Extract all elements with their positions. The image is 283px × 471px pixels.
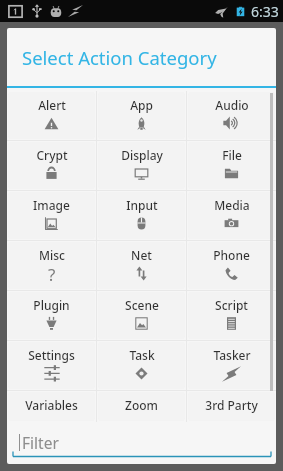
staticText: Plugin — [33, 297, 70, 313]
button[interactable]: Net — [98, 242, 185, 289]
staticText: File — [222, 147, 242, 163]
staticText: Tasker — [213, 347, 251, 363]
staticText: Display — [121, 147, 163, 163]
button[interactable]: Settings — [8, 342, 95, 389]
staticText: Select Action Category — [22, 45, 217, 70]
button[interactable]: Scene — [98, 292, 185, 339]
button[interactable]: Variables — [8, 392, 95, 421]
button[interactable]: Media — [188, 192, 275, 239]
button[interactable]: Alert — [8, 92, 95, 139]
button[interactable]: Crypt — [8, 142, 95, 189]
staticText: Zoom — [125, 397, 158, 413]
staticText: App — [130, 97, 153, 113]
button[interactable]: Script — [188, 292, 275, 339]
button[interactable]: Zoom — [98, 392, 185, 421]
staticText: Alert — [38, 97, 66, 113]
button[interactable]: Misc — [8, 242, 95, 289]
staticText: ? — [48, 263, 56, 286]
staticText: Script — [215, 297, 248, 313]
staticText: 3rd Party — [205, 397, 258, 413]
staticText: Image — [33, 197, 70, 213]
button[interactable]: Display — [98, 142, 185, 189]
button[interactable]: Task — [98, 342, 185, 389]
staticText: Scene — [125, 297, 159, 313]
button[interactable]: Phone — [188, 242, 275, 289]
button[interactable]: Audio — [188, 92, 275, 139]
staticText: Audio — [215, 97, 249, 113]
button[interactable]: Tasker — [188, 342, 275, 389]
staticText: Settings — [28, 347, 75, 363]
staticText: 6:33 — [251, 2, 279, 21]
staticText: Input — [126, 197, 158, 213]
staticText: Variables — [25, 397, 78, 413]
button[interactable]: Image — [8, 192, 95, 239]
button[interactable]: Plugin — [8, 292, 95, 339]
button[interactable]: 3rd Party — [188, 392, 275, 421]
button[interactable]: File — [188, 142, 275, 189]
staticText: Net — [131, 247, 152, 263]
button[interactable]: Input — [98, 192, 185, 239]
staticText: Phone — [213, 247, 250, 263]
button[interactable]: App — [98, 92, 185, 139]
staticText: Misc — [39, 247, 65, 263]
staticText: Media — [214, 197, 250, 213]
staticText: Filter — [22, 432, 59, 453]
staticText: Crypt — [36, 147, 68, 163]
staticText: Task — [129, 347, 155, 363]
